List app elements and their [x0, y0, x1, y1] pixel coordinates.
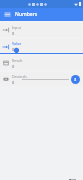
- button[interactable]: Input: [0, 23, 83, 37]
- staticText: Result: [12, 58, 23, 63]
- staticText: Decimals: [12, 74, 27, 79]
- button[interactable]: Value: [0, 39, 83, 54]
- button[interactable]: Open navigation menu: [3, 10, 12, 19]
- button[interactable]: Decimals: [0, 72, 83, 86]
- staticText: Input: [12, 25, 21, 30]
- other: Text selection handle: [13, 47, 20, 54]
- button[interactable]: Decimals value: [71, 75, 80, 84]
- staticText: 0: [12, 31, 15, 36]
- staticText: 0: [12, 80, 15, 85]
- staticText: 0: [12, 47, 15, 52]
- staticText: 3: [74, 77, 77, 82]
- button[interactable]: Result: [0, 56, 83, 70]
- staticText: 0: [12, 64, 15, 69]
- staticText: Numbers: [15, 11, 38, 18]
- staticText: Value: [12, 41, 22, 46]
